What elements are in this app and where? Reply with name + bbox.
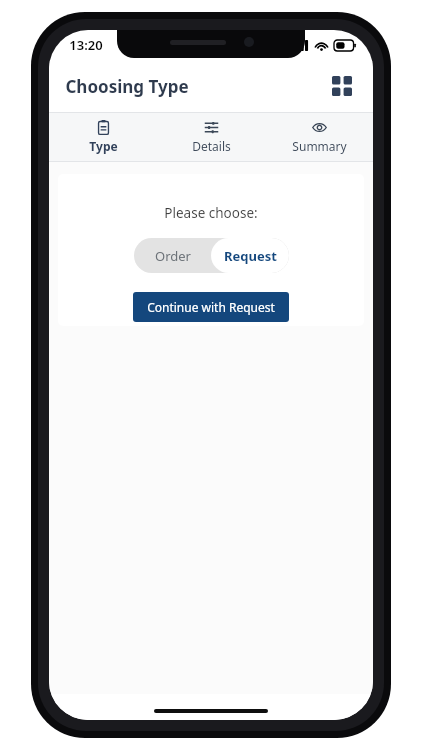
staticText: Continue with Request xyxy=(147,299,275,315)
button[interactable]: Continue with Request xyxy=(133,292,289,322)
button[interactable]: Order xyxy=(134,238,211,273)
staticText: Summary xyxy=(292,138,347,154)
staticText: Type xyxy=(89,138,118,154)
button[interactable]: Details xyxy=(157,112,265,162)
staticText: Request xyxy=(224,247,277,265)
button[interactable]: Type xyxy=(49,112,157,162)
staticText: Please choose: xyxy=(164,204,258,222)
button[interactable]: Grid view xyxy=(325,69,359,103)
staticText: Details xyxy=(192,138,231,154)
button[interactable]: Request xyxy=(211,238,289,273)
staticText: Choosing Type xyxy=(65,75,189,98)
button[interactable]: Summary xyxy=(265,112,373,162)
staticText: 13:20 xyxy=(69,36,103,54)
staticText: Order xyxy=(155,247,191,265)
